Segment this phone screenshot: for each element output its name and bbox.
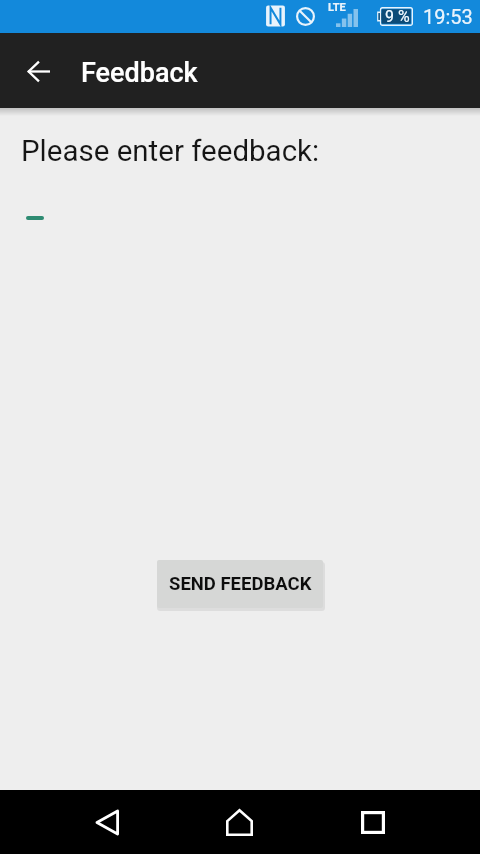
staticText: 19:53 bbox=[423, 5, 473, 28]
button[interactable]: Home bbox=[173, 790, 306, 854]
button[interactable]: Back bbox=[40, 790, 173, 854]
staticText: SEND FEEDBACK bbox=[169, 573, 312, 595]
staticText: Please enter feedback: bbox=[21, 134, 320, 169]
button[interactable]: Navigate up bbox=[14, 47, 62, 95]
button[interactable]: Recent apps bbox=[306, 790, 439, 854]
staticText: Feedback bbox=[81, 57, 198, 89]
button[interactable]: Feedback input bbox=[26, 216, 44, 220]
button[interactable]: SEND FEEDBACK bbox=[157, 560, 323, 608]
staticText: LTE bbox=[328, 1, 346, 14]
staticText: 9 % bbox=[385, 7, 410, 26]
